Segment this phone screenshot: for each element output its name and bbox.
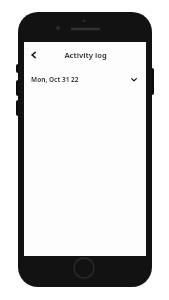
staticText: Activity log <box>64 50 107 60</box>
staticText: Mon, Oct 31 22 <box>31 75 79 84</box>
button[interactable]: Back <box>24 45 44 65</box>
button[interactable]: Mon, Oct 31 22 <box>24 68 146 90</box>
